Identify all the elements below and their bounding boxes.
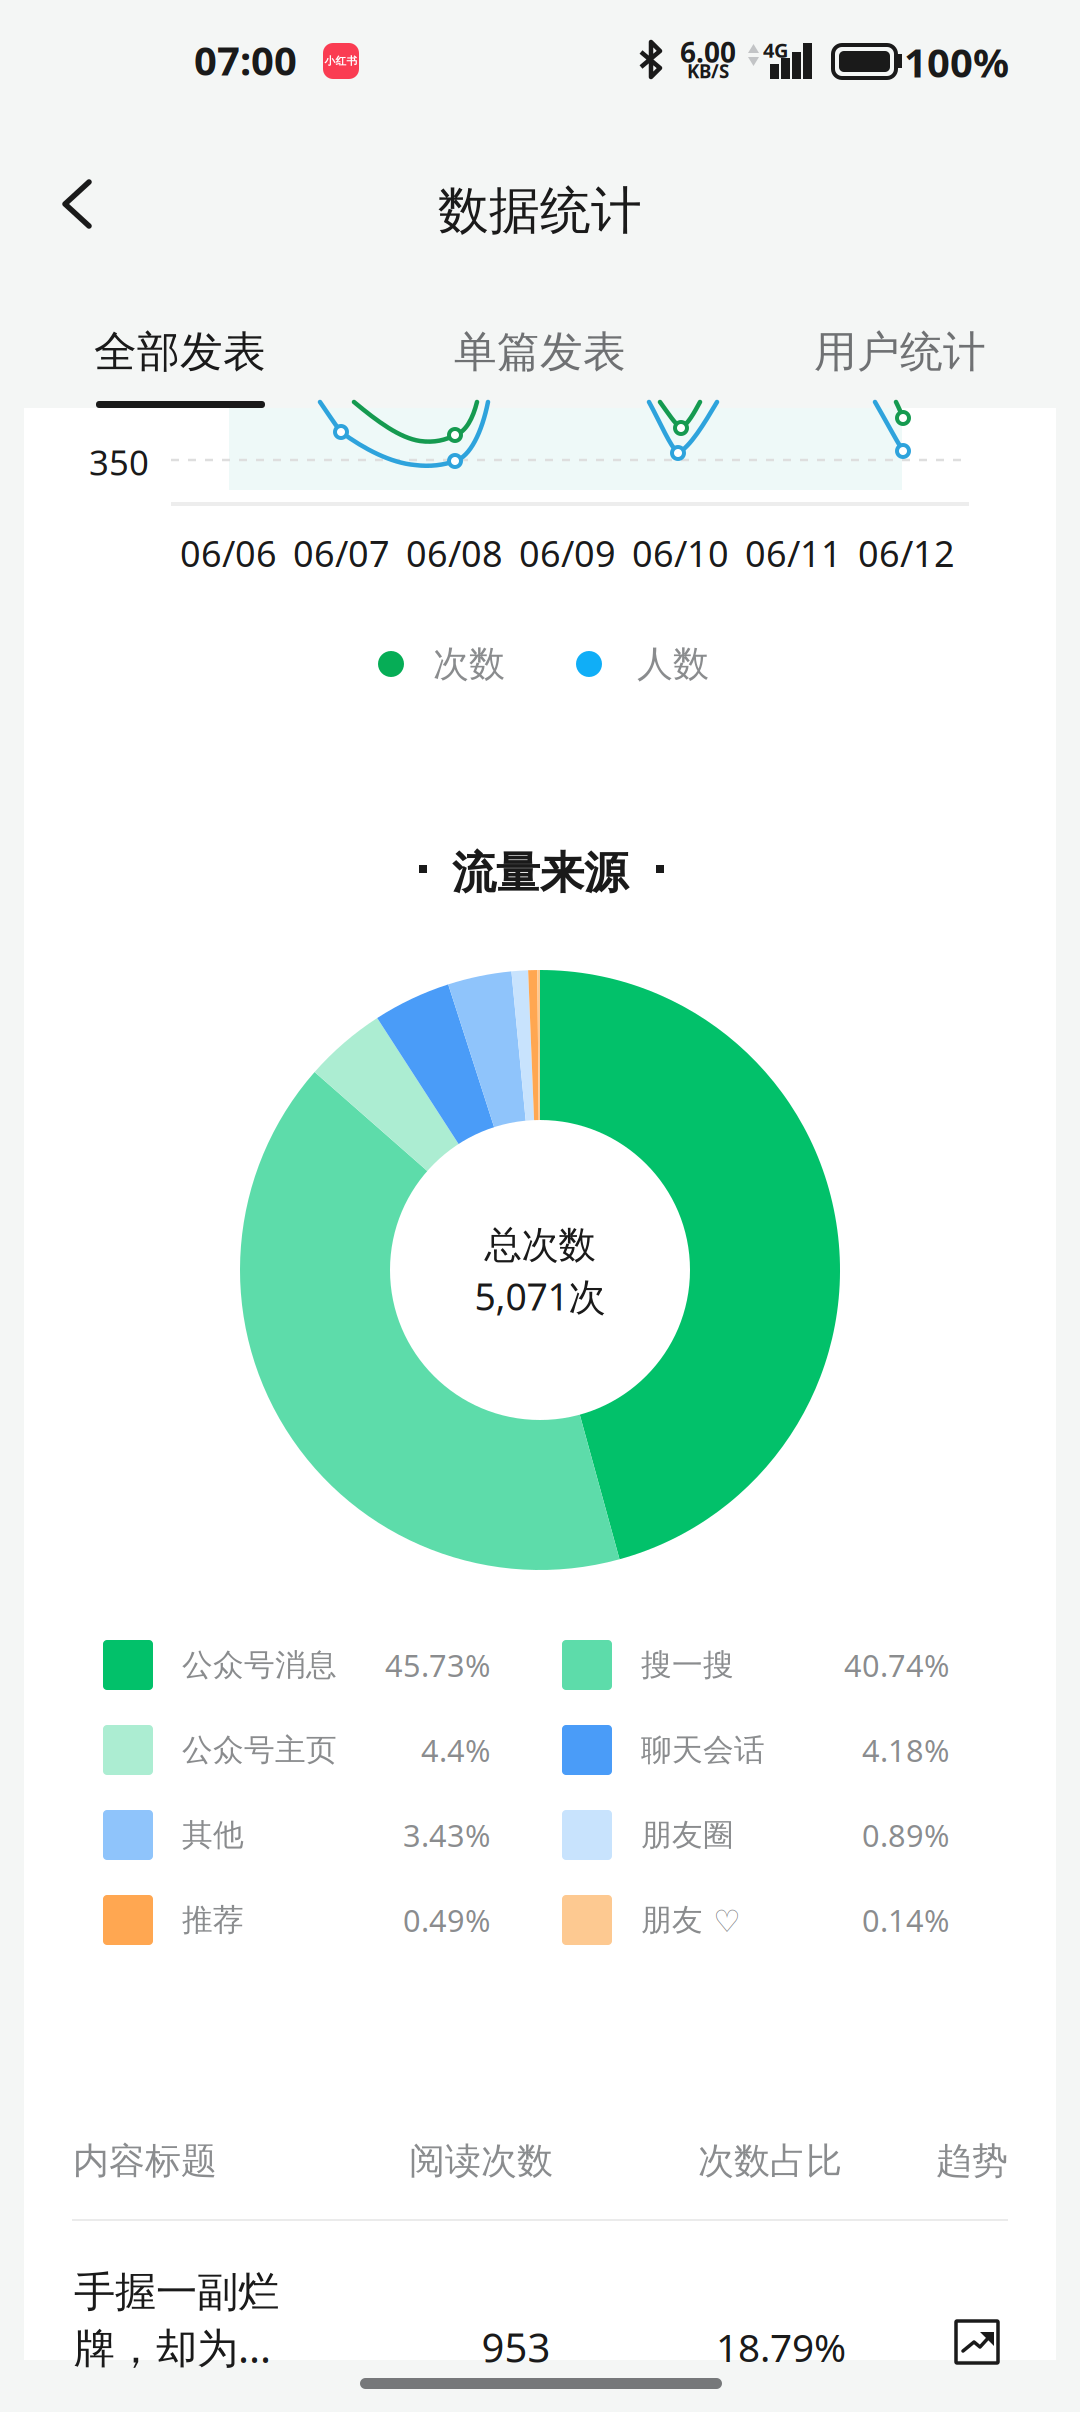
staticText: 45.73% <box>385 1645 490 1685</box>
staticText: 100% <box>904 35 1009 88</box>
staticText: 阅读次数 <box>409 2139 553 2183</box>
staticText: 06/11 <box>745 529 842 577</box>
staticText: 搜一搜 <box>641 1646 734 1684</box>
staticText: 350 <box>89 439 149 485</box>
button[interactable]: Back <box>32 159 122 249</box>
staticText: 朋友圈 <box>641 1816 734 1854</box>
staticText: 07:00 <box>194 33 297 86</box>
button[interactable]: 单篇发表 <box>360 297 720 407</box>
staticText: 手握一副烂 <box>74 2267 279 2317</box>
staticText: 小红书 <box>324 54 357 67</box>
staticText: 公众号主页 <box>182 1731 337 1769</box>
button[interactable]: 全部发表 <box>0 297 360 407</box>
staticText: 0.89% <box>862 1815 949 1855</box>
staticText: 总次数 <box>484 1222 595 1268</box>
staticText: 全部发表 <box>94 326 266 378</box>
staticText: 06/06 <box>180 529 277 577</box>
staticText: 牌，却为... <box>74 2320 271 2374</box>
staticText: 4G <box>763 37 788 63</box>
staticText: 40.74% <box>844 1645 949 1685</box>
staticText: 聊天会话 <box>641 1731 765 1769</box>
staticText: 推荐 <box>182 1901 244 1939</box>
staticText: 数据统计 <box>438 180 642 242</box>
button[interactable]: 手握一副烂 <box>0 2240 1008 2380</box>
staticText: 流量来源 <box>452 846 628 900</box>
staticText: 用户统计 <box>814 326 986 378</box>
staticText: 朋友 ♡ <box>641 1901 740 1939</box>
staticText: 次数占比 <box>698 2139 842 2183</box>
staticText: 趋势 <box>936 2139 1008 2183</box>
staticText: 次数 <box>433 642 505 686</box>
staticText: 0.49% <box>403 1900 490 1940</box>
staticText: KB/S <box>687 59 729 83</box>
staticText: 内容标题 <box>73 2139 217 2183</box>
staticText: 6.00 <box>680 33 736 71</box>
button[interactable]: 用户统计 <box>720 297 1080 407</box>
staticText: 单篇发表 <box>454 326 626 378</box>
staticText: 953 <box>481 2320 550 2373</box>
staticText: 4.4% <box>421 1730 490 1770</box>
staticText: 06/07 <box>293 529 390 577</box>
staticText: 06/09 <box>519 529 616 577</box>
staticText: 06/10 <box>632 529 729 577</box>
staticText: 人数 <box>637 642 709 686</box>
staticText: 06/12 <box>858 529 955 577</box>
staticText: 3.43% <box>403 1815 490 1855</box>
staticText: 5,071次 <box>474 1271 605 1321</box>
staticText: 06/08 <box>406 529 503 577</box>
staticText: 4.18% <box>862 1730 949 1770</box>
staticText: 18.79% <box>716 2321 846 2373</box>
staticText: 其他 <box>182 1816 244 1854</box>
staticText: 公众号消息 <box>182 1646 337 1684</box>
staticText: 0.14% <box>862 1900 949 1940</box>
